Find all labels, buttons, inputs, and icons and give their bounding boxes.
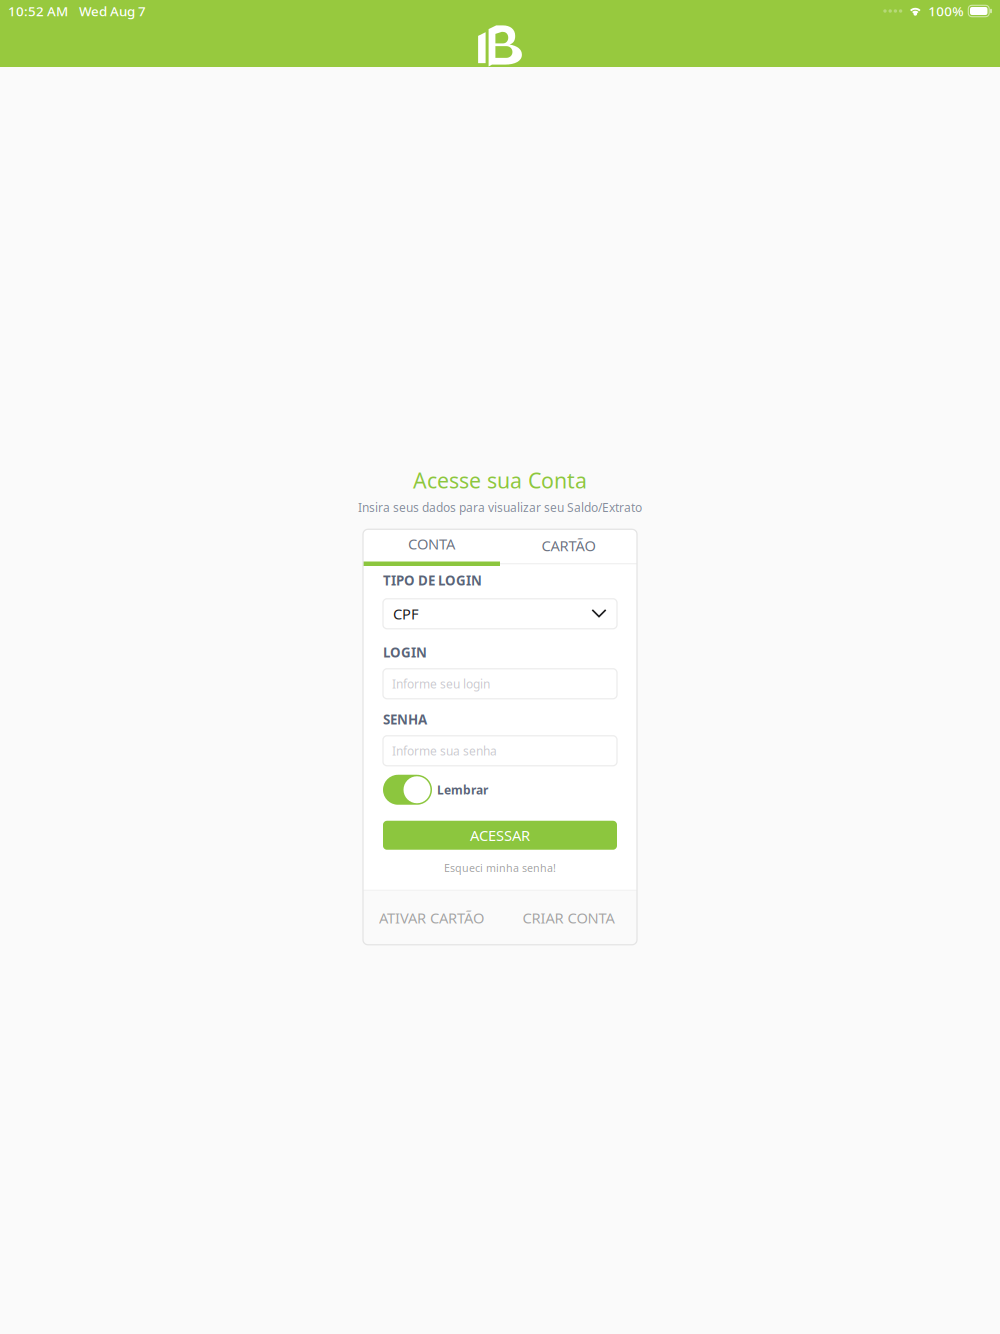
button[interactable]: CARTÃO [500, 529, 637, 558]
staticText: ATIVAR CARTÃO [379, 908, 484, 927]
staticText: ACESSAR [470, 825, 530, 845]
button[interactable]: CONTA [363, 529, 500, 558]
staticText: TIPO DE LOGIN [383, 571, 482, 589]
staticText: Acesse sua Conta [413, 466, 587, 494]
staticText: Wed Aug 7 [79, 2, 146, 20]
button[interactable]: ATIVAR CARTÃO [363, 891, 500, 945]
staticText: 100% [928, 2, 963, 20]
button[interactable]: Esqueci minha senha! [383, 860, 617, 876]
staticText: 10:52 AM [8, 2, 68, 20]
staticText: CRIAR CONTA [522, 908, 614, 927]
staticText: LOGIN [383, 643, 427, 661]
button[interactable]: CPF [383, 599, 617, 629]
staticText: CPF [393, 604, 419, 623]
staticText: Informe seu login [392, 676, 490, 692]
staticText: Esqueci minha senha! [444, 861, 556, 875]
staticText: CONTA [408, 534, 455, 553]
button[interactable]: ACESSAR [383, 821, 617, 850]
staticText: CARTÃO [541, 536, 595, 555]
staticText: Lembrar [437, 782, 488, 798]
staticText: SENHA [383, 710, 427, 728]
staticText: Informe sua senha [392, 743, 497, 759]
button[interactable]: CRIAR CONTA [500, 891, 637, 945]
button[interactable]: Lembrar [383, 775, 432, 805]
staticText: Insira seus dados para visualizar seu Sa… [358, 499, 642, 515]
